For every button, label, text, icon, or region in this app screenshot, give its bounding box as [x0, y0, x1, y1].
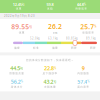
- staticText: 体脂肪率: [82, 31, 94, 34]
- staticText: 肥胖: [71, 46, 77, 50]
- staticText: 22.8: [44, 65, 54, 72]
- staticText: 26.2: [48, 22, 62, 31]
- staticText: 皮下脂肪率: [42, 72, 57, 75]
- staticText: 肥胖: [90, 46, 96, 50]
- staticText: 骨骼肌含量: [9, 72, 24, 75]
- staticText: 25.7: [80, 22, 94, 31]
- staticText: 标准: [33, 46, 39, 50]
- staticText: %: [21, 80, 23, 83]
- staticText: 骨骼肌率: [75, 7, 87, 10]
- staticText: 去脂体重: [44, 85, 56, 88]
- staticText: kg: [22, 3, 25, 6]
- staticText: kg: [53, 80, 56, 83]
- staticText: 44.5: [10, 65, 20, 72]
- staticText: 59.8: [46, 2, 53, 7]
- staticText: 偏重: [52, 46, 58, 50]
- staticText: %: [94, 25, 96, 28]
- staticText: 43.2: [43, 78, 53, 85]
- staticText: 您的体成分数据如下，快来看看吧～: [26, 58, 74, 62]
- staticText: 89.1kg: [86, 37, 96, 40]
- staticText: kg: [20, 66, 23, 70]
- staticText: 56.2: [11, 78, 21, 85]
- staticText: %: [87, 80, 89, 83]
- staticText: 体脂: [47, 7, 53, 10]
- staticText: 9: [82, 65, 85, 72]
- staticText: %: [84, 3, 86, 6]
- staticText: BMI: [52, 31, 57, 34]
- staticText: kg: [29, 25, 32, 28]
- staticText: 内脏脂肪: [77, 72, 89, 75]
- staticText: %: [54, 66, 56, 70]
- staticText: 12.45: [13, 2, 22, 7]
- staticText: 89.55: [11, 22, 29, 31]
- staticText: 体重: [19, 31, 25, 34]
- staticText: 63.1kg: [48, 37, 58, 40]
- staticText: 偏瘦: [14, 46, 20, 50]
- staticText: 57.4: [77, 78, 87, 85]
- staticText: 2022年9月19日 8:23: [4, 14, 35, 18]
- staticText: 80.85kg: [66, 37, 78, 40]
- staticText: 44.8: [77, 2, 84, 7]
- staticText: 蛋白质率: [77, 85, 89, 88]
- staticText: 体重: [16, 7, 22, 10]
- staticText: 52.0kg: [30, 37, 40, 40]
- staticText: 身体水分: [11, 85, 23, 88]
